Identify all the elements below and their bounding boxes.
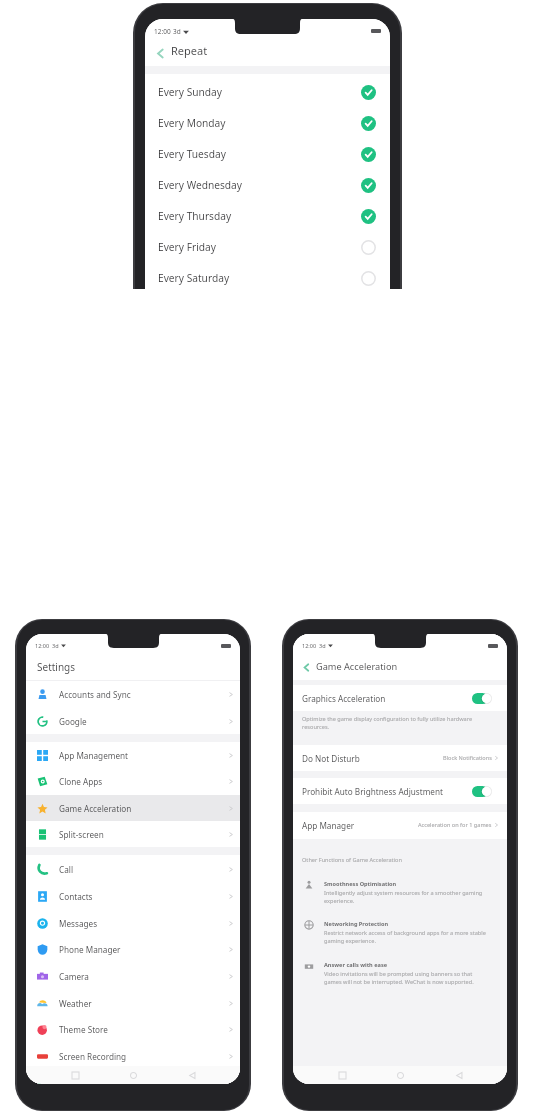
staticText: Google bbox=[59, 716, 229, 727]
button[interactable]: Recents bbox=[332, 1066, 352, 1084]
button[interactable]: Split-screen bbox=[26, 821, 240, 847]
staticText: Restrict network access of background ap… bbox=[324, 929, 489, 945]
staticText: Networking Protection bbox=[324, 920, 389, 928]
button[interactable]: Accounts and Sync bbox=[26, 681, 240, 707]
staticText: Repeat bbox=[171, 43, 208, 58]
staticText: 3d bbox=[319, 642, 326, 649]
button[interactable]: Every Sunday bbox=[145, 77, 390, 108]
staticText: Camera bbox=[59, 971, 229, 982]
staticText: Game Acceleration bbox=[59, 803, 229, 814]
staticText: Intelligently adjust system resources fo… bbox=[324, 889, 489, 905]
staticText: Weather bbox=[59, 998, 229, 1009]
staticText: Every Sunday bbox=[158, 85, 361, 99]
staticText: 12:00 bbox=[35, 642, 50, 649]
staticText: Contacts bbox=[59, 891, 229, 902]
button[interactable]: Contacts bbox=[26, 883, 240, 909]
staticText: Game Acceleration bbox=[316, 660, 398, 673]
button[interactable]: Camera bbox=[26, 963, 240, 989]
staticText: 12:00 bbox=[302, 642, 317, 649]
staticText: Phone Manager bbox=[59, 944, 229, 955]
staticText: Graphics Acceleration bbox=[302, 693, 472, 704]
staticText: Settings bbox=[37, 660, 76, 674]
staticText: Smoothness Optimisation bbox=[324, 880, 397, 888]
staticText: Theme Store bbox=[59, 1024, 229, 1035]
button[interactable]: Every Wednesday bbox=[145, 170, 390, 201]
staticText: App Management bbox=[59, 750, 229, 761]
button[interactable]: Home bbox=[390, 1066, 410, 1084]
button[interactable]: Recents bbox=[65, 1066, 85, 1084]
button[interactable]: Clone Apps bbox=[26, 768, 240, 794]
button[interactable]: App Management bbox=[26, 742, 240, 768]
staticText: Every Friday bbox=[158, 240, 361, 254]
button[interactable]: Every Friday bbox=[145, 232, 390, 263]
button[interactable]: Home bbox=[123, 1066, 143, 1084]
staticText: Accounts and Sync bbox=[59, 689, 229, 700]
button[interactable]: Theme Store bbox=[26, 1016, 240, 1042]
button[interactable]: Every Thursday bbox=[145, 201, 390, 232]
staticText: Split-screen bbox=[59, 829, 229, 840]
button[interactable]: Every Monday bbox=[145, 108, 390, 139]
button[interactable]: Screen Recording bbox=[26, 1043, 240, 1069]
staticText: Messages bbox=[59, 918, 229, 929]
staticText: Block Notifications bbox=[443, 754, 492, 762]
staticText: Every Saturday bbox=[158, 271, 361, 285]
button[interactable]: Phone Manager bbox=[26, 936, 240, 962]
button[interactable]: Graphics Acceleration bbox=[293, 685, 507, 711]
button[interactable]: Google bbox=[26, 708, 240, 734]
button[interactable]: App Manager bbox=[293, 812, 507, 838]
staticText: 12:00 bbox=[154, 27, 171, 36]
button[interactable]: Prohibit Auto Brightness Adjustment bbox=[293, 778, 507, 804]
staticText: Every Thursday bbox=[158, 209, 361, 223]
staticText: Answer calls with ease bbox=[324, 961, 388, 969]
staticText: Every Tuesday bbox=[158, 147, 361, 161]
staticText: Call bbox=[59, 864, 229, 875]
button[interactable]: Messages bbox=[26, 910, 240, 936]
button[interactable]: Back bbox=[299, 660, 313, 674]
button[interactable]: Back bbox=[449, 1066, 469, 1084]
staticText: Optimize the game display configuration … bbox=[302, 715, 475, 731]
button[interactable]: Do Not Disturb bbox=[293, 745, 507, 771]
button[interactable]: Back bbox=[152, 45, 168, 61]
button[interactable]: Game Acceleration bbox=[26, 795, 240, 821]
staticText: Do Not Disturb bbox=[302, 753, 443, 764]
button[interactable]: Every Saturday bbox=[145, 263, 390, 294]
staticText: Every Monday bbox=[158, 116, 361, 130]
button[interactable]: Back bbox=[182, 1066, 202, 1084]
staticText: Every Wednesday bbox=[158, 178, 361, 192]
button[interactable]: Every Tuesday bbox=[145, 139, 390, 170]
button[interactable]: Weather bbox=[26, 990, 240, 1016]
staticText: Screen Recording bbox=[59, 1051, 229, 1062]
staticText: Other Functions of Game Acceleration bbox=[302, 856, 402, 864]
staticText: App Manager bbox=[302, 820, 418, 831]
staticText: Prohibit Auto Brightness Adjustment bbox=[302, 786, 472, 797]
button[interactable]: Call bbox=[26, 856, 240, 882]
staticText: Clone Apps bbox=[59, 776, 229, 787]
staticText: 3d bbox=[52, 642, 59, 649]
staticText: 3d bbox=[173, 27, 181, 36]
staticText: Acceleration on for 1 games bbox=[418, 821, 492, 829]
staticText: Video invitations will be prompted using… bbox=[324, 970, 489, 986]
